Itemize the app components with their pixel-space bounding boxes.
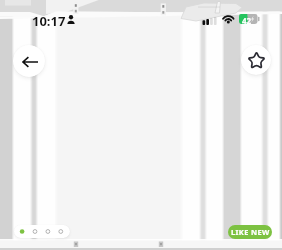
- button[interactable]: [14, 225, 70, 238]
- button[interactable]: Add to favourites: [241, 45, 271, 75]
- staticText: 10:17: [32, 12, 66, 30]
- staticText: 42: [242, 15, 252, 25]
- button[interactable]: Back: [13, 45, 45, 77]
- button[interactable]: LIKE NEW: [228, 225, 272, 239]
- staticText: LIKE NEW: [231, 227, 270, 237]
